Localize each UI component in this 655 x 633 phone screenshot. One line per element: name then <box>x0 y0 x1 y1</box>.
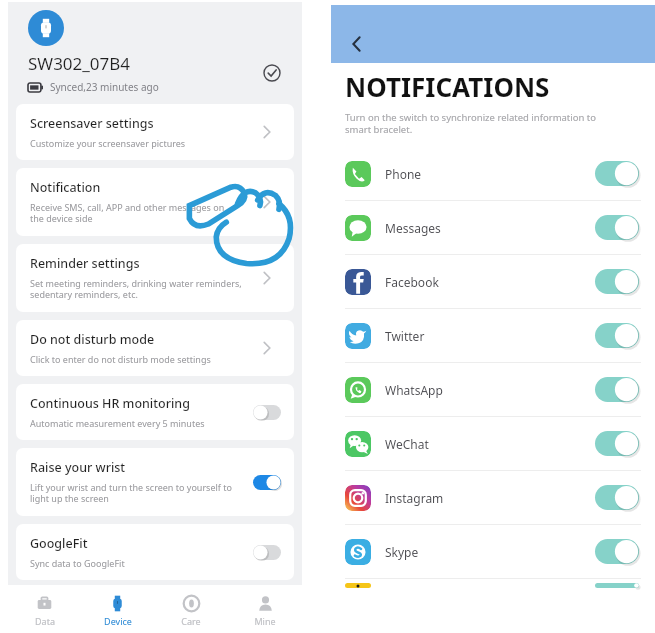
staticText: Data <box>35 615 55 627</box>
staticText: NOTIFICATIONS <box>345 69 550 104</box>
staticText: Instagram <box>385 490 444 506</box>
button[interactable]: Toggle on <box>331 579 655 588</box>
staticText: Reminder settings <box>30 255 140 272</box>
button[interactable]: Device <box>28 10 64 46</box>
button[interactable]: Off <box>253 545 281 560</box>
button[interactable]: Toggle on <box>595 431 639 456</box>
button[interactable]: Device <box>81 591 154 627</box>
staticText: Phone <box>385 166 422 182</box>
staticText: Customize your screensaver pictures <box>30 137 186 149</box>
staticText: WhatsApp <box>385 382 443 398</box>
button[interactable]: On <box>253 475 281 490</box>
staticText: Notification <box>30 179 101 196</box>
button[interactable]: Notification <box>16 168 294 236</box>
staticText: Device <box>104 615 132 627</box>
button[interactable]: Sync status <box>260 61 284 85</box>
staticText: Twitter <box>385 328 425 344</box>
button[interactable]: Continuous HR monitoring <box>16 384 294 440</box>
button[interactable]: Toggle on <box>595 583 639 588</box>
staticText: Sync data to GoogleFit <box>30 557 125 569</box>
button[interactable]: GoogleFit <box>16 524 294 580</box>
button[interactable]: Phone <box>331 147 655 200</box>
staticText: GoogleFit <box>30 535 88 552</box>
button[interactable]: Off <box>253 405 281 420</box>
staticText: Receive SMS, call, APP and other message… <box>30 201 225 225</box>
button[interactable]: Facebook <box>331 255 655 308</box>
staticText: Care <box>181 615 201 627</box>
staticText: Skype <box>385 544 419 560</box>
button[interactable]: Screensaver settings <box>16 104 294 160</box>
button[interactable]: WeChat <box>331 417 655 470</box>
button[interactable]: Toggle on <box>595 323 639 348</box>
staticText: Raise your wrist <box>30 459 126 476</box>
staticText: Do not disturb mode <box>30 331 155 348</box>
button[interactable]: Toggle on <box>595 215 639 240</box>
button[interactable]: Twitter <box>331 309 655 362</box>
staticText: Continuous HR monitoring <box>30 395 190 412</box>
staticText: Turn on the switch to synchronize relate… <box>345 111 596 136</box>
button[interactable]: Toggle on <box>595 485 639 510</box>
staticText: Automatic measurement every 5 minutes <box>30 417 205 429</box>
staticText: Click to enter do not disturb mode setti… <box>30 353 211 365</box>
button[interactable]: Care <box>154 591 228 627</box>
staticText: WeChat <box>385 436 429 452</box>
button[interactable]: Back <box>343 31 369 57</box>
button[interactable]: Toggle on <box>595 539 639 564</box>
button[interactable]: Skype <box>331 525 655 578</box>
button[interactable]: Messages <box>331 201 655 254</box>
button[interactable]: Raise your wrist <box>16 448 294 516</box>
staticText: Mine <box>254 615 276 627</box>
button[interactable]: Data <box>8 591 81 627</box>
staticText: Facebook <box>385 274 439 290</box>
staticText: Synced,23 minutes ago <box>50 80 159 94</box>
button[interactable]: Toggle on <box>595 161 639 186</box>
staticText: Messages <box>385 220 441 236</box>
button[interactable]: Mine <box>228 591 302 627</box>
button[interactable]: Do not disturb mode <box>16 320 294 376</box>
button[interactable]: Toggle on <box>595 377 639 402</box>
button[interactable]: WhatsApp <box>331 363 655 416</box>
staticText: SW302_07B4 <box>28 52 131 75</box>
button[interactable]: Toggle on <box>595 269 639 294</box>
staticText: Set meeting reminders, drinking water re… <box>30 277 242 301</box>
staticText: Screensaver settings <box>30 115 154 132</box>
button[interactable]: Instagram <box>331 471 655 524</box>
button[interactable]: Reminder settings <box>16 244 294 312</box>
staticText: Lift your wrist and turn the screen to y… <box>30 481 232 505</box>
